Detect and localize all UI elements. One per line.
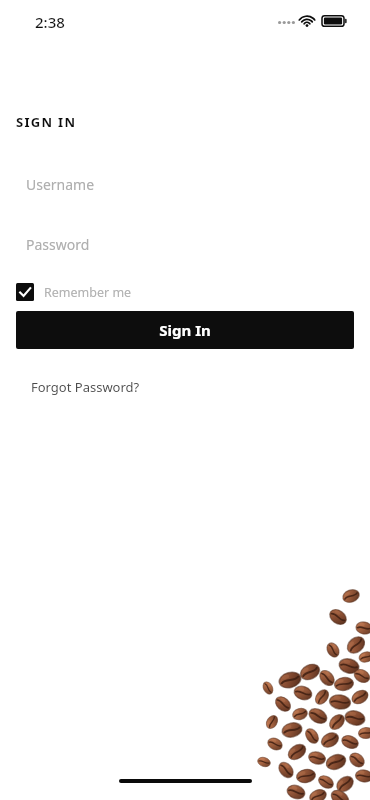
staticText: Username xyxy=(26,175,95,194)
button[interactable]: Password xyxy=(16,226,354,262)
staticText: Sign In xyxy=(159,320,211,340)
other: Home indicator xyxy=(119,779,252,783)
staticText: SIGN IN xyxy=(16,113,77,131)
button[interactable]: Remember me xyxy=(16,280,370,304)
staticText: Password xyxy=(26,235,90,254)
button[interactable]: Forgot Password? xyxy=(24,374,147,400)
staticText: 2:38 xyxy=(35,12,65,32)
button[interactable]: Username xyxy=(16,166,354,202)
staticText: Forgot Password? xyxy=(31,378,140,396)
staticText: Remember me xyxy=(44,284,132,301)
button[interactable]: Sign In xyxy=(16,311,354,349)
